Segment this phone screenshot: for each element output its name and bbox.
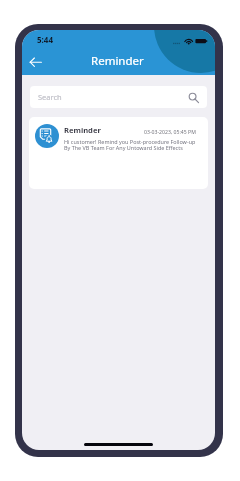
- button[interactable]: Search: [30, 86, 207, 108]
- staticText: 03-03-2023, 05:45 PM: [144, 128, 196, 135]
- staticText: Search: [38, 92, 62, 102]
- staticText: Reminder: [64, 125, 101, 135]
- button[interactable]: Reminder: [29, 117, 208, 189]
- staticText: Hi customer! Remind you Post-procedure F…: [64, 138, 196, 151]
- staticText: Reminder: [91, 53, 144, 69]
- staticText: 5:44: [37, 34, 53, 45]
- button[interactable]: Back: [25, 50, 47, 72]
